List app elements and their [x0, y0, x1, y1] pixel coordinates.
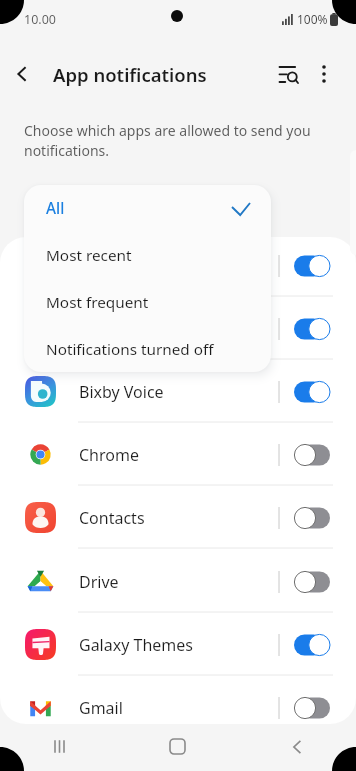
button[interactable]: All — [24, 185, 271, 232]
button[interactable]: Chrome — [0, 423, 356, 486]
button[interactable]: Bixby Voice — [0, 360, 356, 423]
button[interactable]: Most frequent — [24, 279, 271, 326]
button[interactable]: Back — [237, 722, 356, 771]
staticText: 10.00 — [24, 11, 56, 28]
staticText: Most recent — [46, 245, 132, 266]
staticText: Contacts — [79, 507, 145, 529]
staticText: 100% — [297, 11, 328, 27]
staticText: Most frequent — [46, 292, 149, 313]
button[interactable]: Contacts — [0, 486, 356, 549]
staticText: Gmail — [79, 697, 123, 719]
staticText: Chrome — [79, 444, 139, 466]
staticText: Galaxy Themes — [79, 634, 193, 656]
button[interactable]: More options — [302, 52, 346, 96]
button[interactable]: Most recent — [24, 232, 271, 279]
button[interactable] — [0, 237, 356, 297]
staticText: Notifications turned off — [46, 339, 214, 360]
staticText: Bixby Voice — [79, 381, 164, 403]
staticText: App notifications — [53, 62, 207, 87]
button[interactable]: Search — [266, 52, 310, 96]
staticText: Choose which apps are allowed to send yo… — [24, 121, 332, 161]
button[interactable]: Drive — [0, 550, 356, 613]
button[interactable] — [0, 297, 356, 360]
button[interactable]: Back — [0, 50, 44, 98]
button[interactable]: Gmail — [0, 676, 356, 724]
button[interactable]: Notifications turned off — [24, 326, 271, 372]
button[interactable]: Home — [118, 722, 237, 771]
staticText: All — [46, 198, 65, 219]
button[interactable]: Galaxy Themes — [0, 613, 356, 676]
staticText: Drive — [79, 571, 119, 593]
button[interactable]: Recents — [0, 722, 118, 771]
